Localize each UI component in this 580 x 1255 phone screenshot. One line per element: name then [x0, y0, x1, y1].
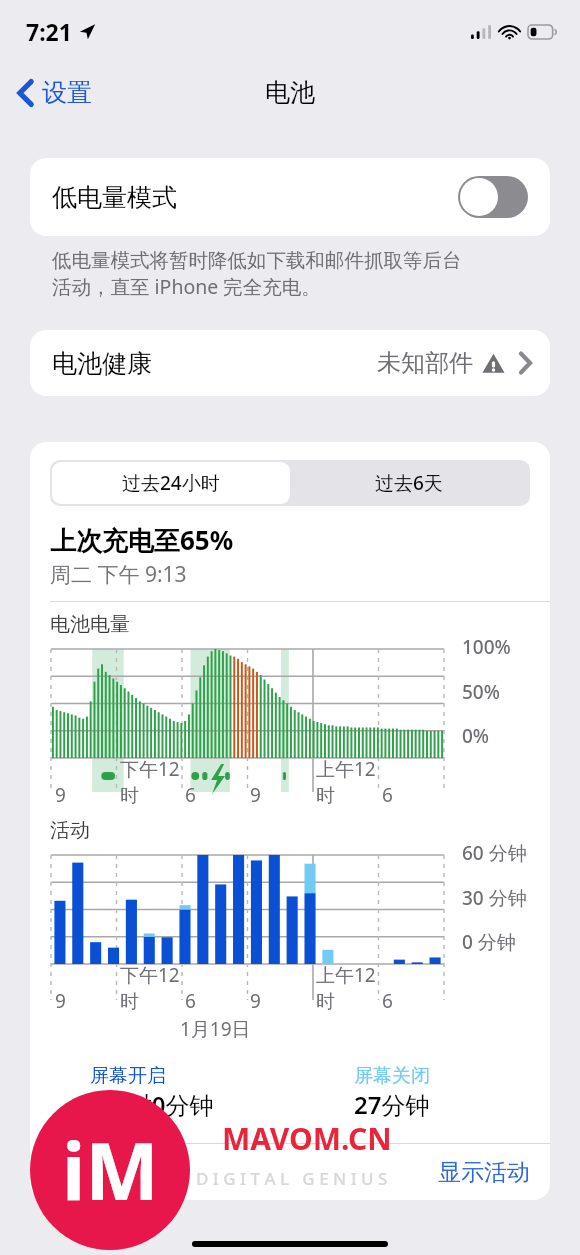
button[interactable]: 低电量模式 [30, 158, 550, 236]
staticText: 上午12时 [316, 962, 378, 1014]
staticText: 屏幕开启 [90, 1064, 166, 1088]
staticText: 6 [185, 988, 196, 1014]
staticText: 50% [462, 679, 500, 705]
staticText: 1月19日 [180, 1016, 251, 1042]
staticText: 6 [382, 782, 393, 808]
staticText: 0% [462, 723, 490, 749]
staticText: 低电量模式将暂时降低如下载和邮件抓取等后台 [52, 248, 462, 273]
staticText: 低电量模式 [52, 182, 177, 213]
staticText: 9 [55, 782, 66, 808]
staticText: 60 分钟 [462, 840, 527, 866]
staticText: 周二 下午 9:13 [50, 560, 187, 589]
staticText: 27分钟 [354, 1088, 430, 1121]
staticText: 电池健康 [52, 348, 152, 379]
staticText: 活动 [50, 818, 90, 843]
staticText: 下午12时 [120, 962, 181, 1014]
button[interactable]: 过去6天 [290, 462, 528, 504]
staticText: App电池用量 [50, 1157, 185, 1188]
staticText: D I G I T A L G E N I U S [196, 1167, 388, 1190]
button[interactable]: 低电量模式开关 [458, 176, 528, 218]
staticText: 100% [462, 634, 511, 660]
staticText: 9 [55, 988, 66, 1014]
staticText: 7:21 [26, 16, 72, 47]
staticText: 30 分钟 [462, 885, 527, 911]
staticText: 9 [250, 988, 261, 1014]
staticText: 显示活动 [438, 1158, 530, 1187]
staticText: 7小时0分钟 [90, 1088, 214, 1121]
staticText: 屏幕关闭 [354, 1064, 430, 1088]
staticText: 9 [250, 782, 261, 808]
staticText: 过去6天 [375, 470, 443, 496]
staticText: 上午12时 [316, 756, 378, 808]
staticText: 0 分钟 [462, 929, 516, 955]
staticText: 6 [382, 988, 393, 1014]
button[interactable]: 设置 [0, 71, 102, 114]
button[interactable]: 电池健康 [30, 330, 550, 396]
staticText: 6 [185, 782, 196, 808]
staticText: 上次充电至65% [50, 522, 234, 558]
staticText: 未知部件 [377, 348, 473, 378]
staticText: 电池 [265, 77, 315, 108]
button[interactable]: 过去24小时 [52, 462, 290, 504]
staticText: 设置 [42, 77, 92, 108]
staticText: 活动，直至 iPhone 完全充电。 [52, 273, 321, 300]
button[interactable]: 显示活动 [438, 1158, 530, 1187]
staticText: 过去24小时 [122, 470, 220, 496]
staticText: iM [62, 1117, 159, 1223]
staticText: MAVOM.CN [222, 1118, 392, 1159]
staticText: 下午12时 [120, 756, 181, 808]
staticText: 电池电量 [50, 612, 130, 637]
